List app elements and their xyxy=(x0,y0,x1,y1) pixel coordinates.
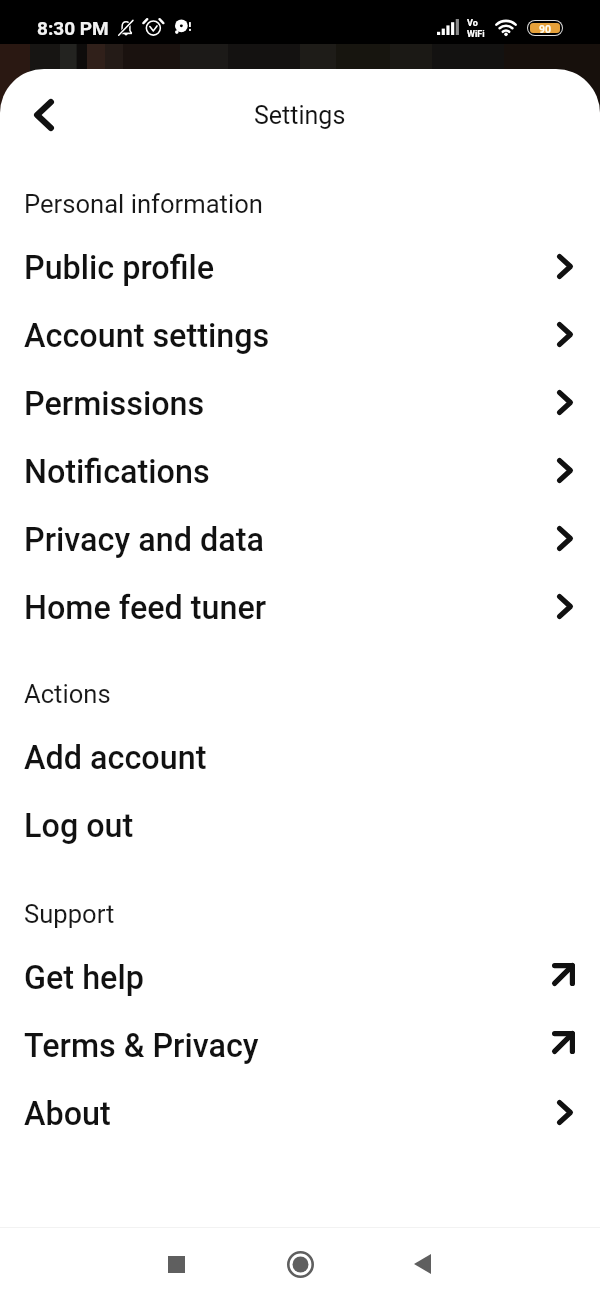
button[interactable]: Account settings xyxy=(0,302,600,370)
button[interactable]: Public profile xyxy=(0,234,600,302)
button[interactable]: Back xyxy=(16,87,72,143)
button[interactable]: Add account xyxy=(0,724,600,792)
staticText: Notifications xyxy=(24,453,210,491)
staticText: Vo xyxy=(467,18,478,29)
button[interactable]: Home feed tuner xyxy=(0,574,600,642)
button[interactable]: About xyxy=(0,1080,600,1148)
staticText: Actions xyxy=(24,679,111,709)
staticText: Permissions xyxy=(24,385,205,423)
button[interactable]: Permissions xyxy=(0,370,600,438)
button[interactable]: Recent apps xyxy=(148,1236,204,1292)
button[interactable]: Notifications xyxy=(0,438,600,506)
staticText: 90 xyxy=(539,23,552,33)
staticText: Support xyxy=(24,899,115,929)
staticText: Home feed tuner xyxy=(24,589,267,627)
staticText: Personal information xyxy=(24,189,263,219)
staticText: Terms & Privacy xyxy=(24,1027,259,1065)
button[interactable]: Privacy and data xyxy=(0,506,600,574)
staticText: Privacy and data xyxy=(24,521,264,559)
staticText: Add account xyxy=(24,739,207,777)
staticText: 8:30 PM xyxy=(37,17,109,39)
button[interactable]: Home xyxy=(272,1236,328,1292)
staticText: WiFi xyxy=(467,29,485,40)
staticText: Account settings xyxy=(24,317,270,355)
button[interactable]: Terms & Privacy xyxy=(0,1012,600,1080)
staticText: Get help xyxy=(24,959,144,997)
staticText: Settings xyxy=(254,101,346,130)
button[interactable]: Get help xyxy=(0,944,600,1012)
staticText: Log out xyxy=(24,807,134,845)
button[interactable]: Back xyxy=(394,1236,450,1292)
staticText: About xyxy=(24,1095,111,1133)
staticText: Public profile xyxy=(24,249,215,287)
button[interactable]: Log out xyxy=(0,792,600,860)
